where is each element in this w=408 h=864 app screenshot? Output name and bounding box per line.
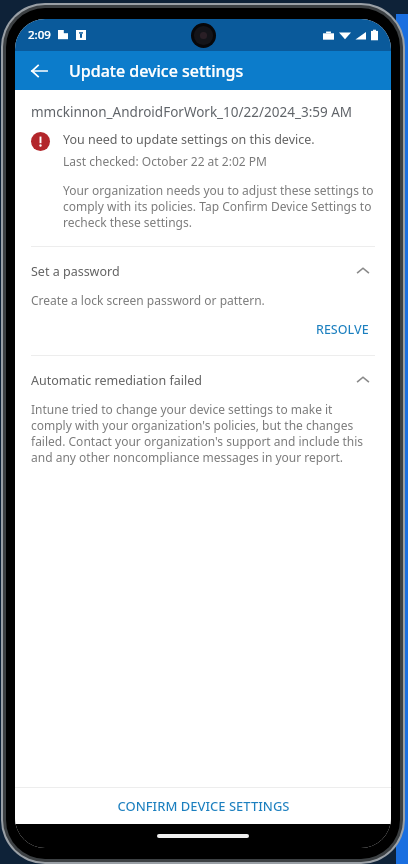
staticText: Automatic remediation failed — [31, 372, 351, 389]
staticText: Update device settings — [69, 60, 244, 82]
staticText: Set a password — [31, 263, 351, 280]
staticText: CONFIRM DEVICE SETTINGS — [117, 797, 290, 815]
staticText: Create a lock screen password or pattern… — [31, 292, 265, 308]
staticText: 2:09 — [28, 27, 51, 43]
staticText: Intune tried to change your device setti… — [31, 401, 375, 465]
button[interactable]: RESOLVE — [310, 318, 375, 341]
staticText: RESOLVE — [316, 321, 369, 338]
button[interactable]: Set a password — [15, 247, 391, 355]
button[interactable]: Automatic remediation failed — [15, 356, 391, 473]
button[interactable]: Collapse section — [351, 368, 375, 392]
button[interactable]: CONFIRM DEVICE SETTINGS — [15, 788, 391, 824]
staticText: You need to update settings on this devi… — [63, 131, 315, 148]
staticText: Your organization needs you to adjust th… — [63, 182, 375, 230]
staticText: mmckinnon_AndroidForWork_10/22/2024_3:59… — [31, 103, 353, 121]
staticText: Last checked: October 22 at 2:02 PM — [63, 153, 267, 169]
button[interactable]: Back — [21, 53, 57, 89]
button[interactable]: Collapse section — [351, 259, 375, 283]
